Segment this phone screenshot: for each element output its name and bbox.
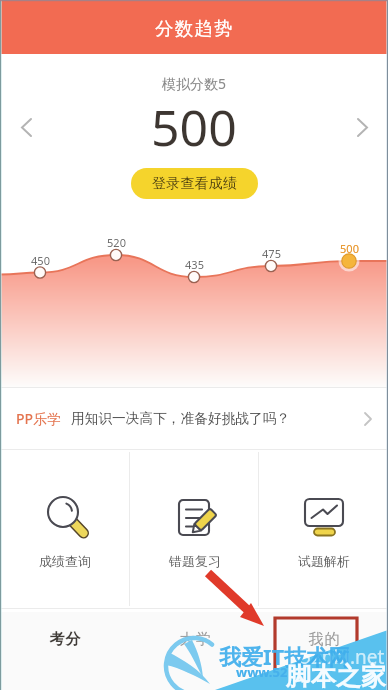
staticText: 成绩查询 <box>39 553 91 569</box>
staticText: 我的 <box>308 630 340 649</box>
staticText: 450 <box>31 253 50 268</box>
staticText: 大学 <box>179 630 211 649</box>
staticText: 500 <box>340 241 359 256</box>
staticText: 52bbi.net <box>300 644 385 670</box>
staticText: 500 <box>151 93 237 161</box>
button[interactable]: PP乐学 <box>0 388 388 449</box>
staticText: 登录查看成绩 <box>152 175 238 193</box>
staticText: 我爱IT技术网 <box>219 641 351 671</box>
staticText: 分数趋势 <box>155 17 234 40</box>
staticText: 试题解析 <box>298 553 350 569</box>
button[interactable]: 错题复习 <box>130 450 259 608</box>
button[interactable]: Next score <box>340 105 385 150</box>
button[interactable]: Previous score <box>4 105 49 150</box>
staticText: 脚本之家 <box>286 661 386 690</box>
staticText: 435 <box>185 257 204 272</box>
button[interactable]: 我的 <box>259 612 388 667</box>
button[interactable]: 考分 <box>0 612 130 667</box>
staticText: PP乐学 <box>16 409 62 428</box>
staticText: 模拟分数5 <box>162 74 227 93</box>
button[interactable]: 大学 <box>130 612 259 667</box>
staticText: 520 <box>107 235 126 250</box>
staticText: 用知识一决高下，准备好挑战了吗？ <box>71 410 290 427</box>
button[interactable]: 试题解析 <box>259 450 388 608</box>
staticText: 475 <box>262 246 281 261</box>
button[interactable]: 登录查看成绩 <box>131 168 258 199</box>
button[interactable]: 成绩查询 <box>0 450 130 608</box>
staticText: 考分 <box>49 630 81 649</box>
staticText: 错题复习 <box>169 553 221 569</box>
staticText: www.52 <box>236 663 288 681</box>
